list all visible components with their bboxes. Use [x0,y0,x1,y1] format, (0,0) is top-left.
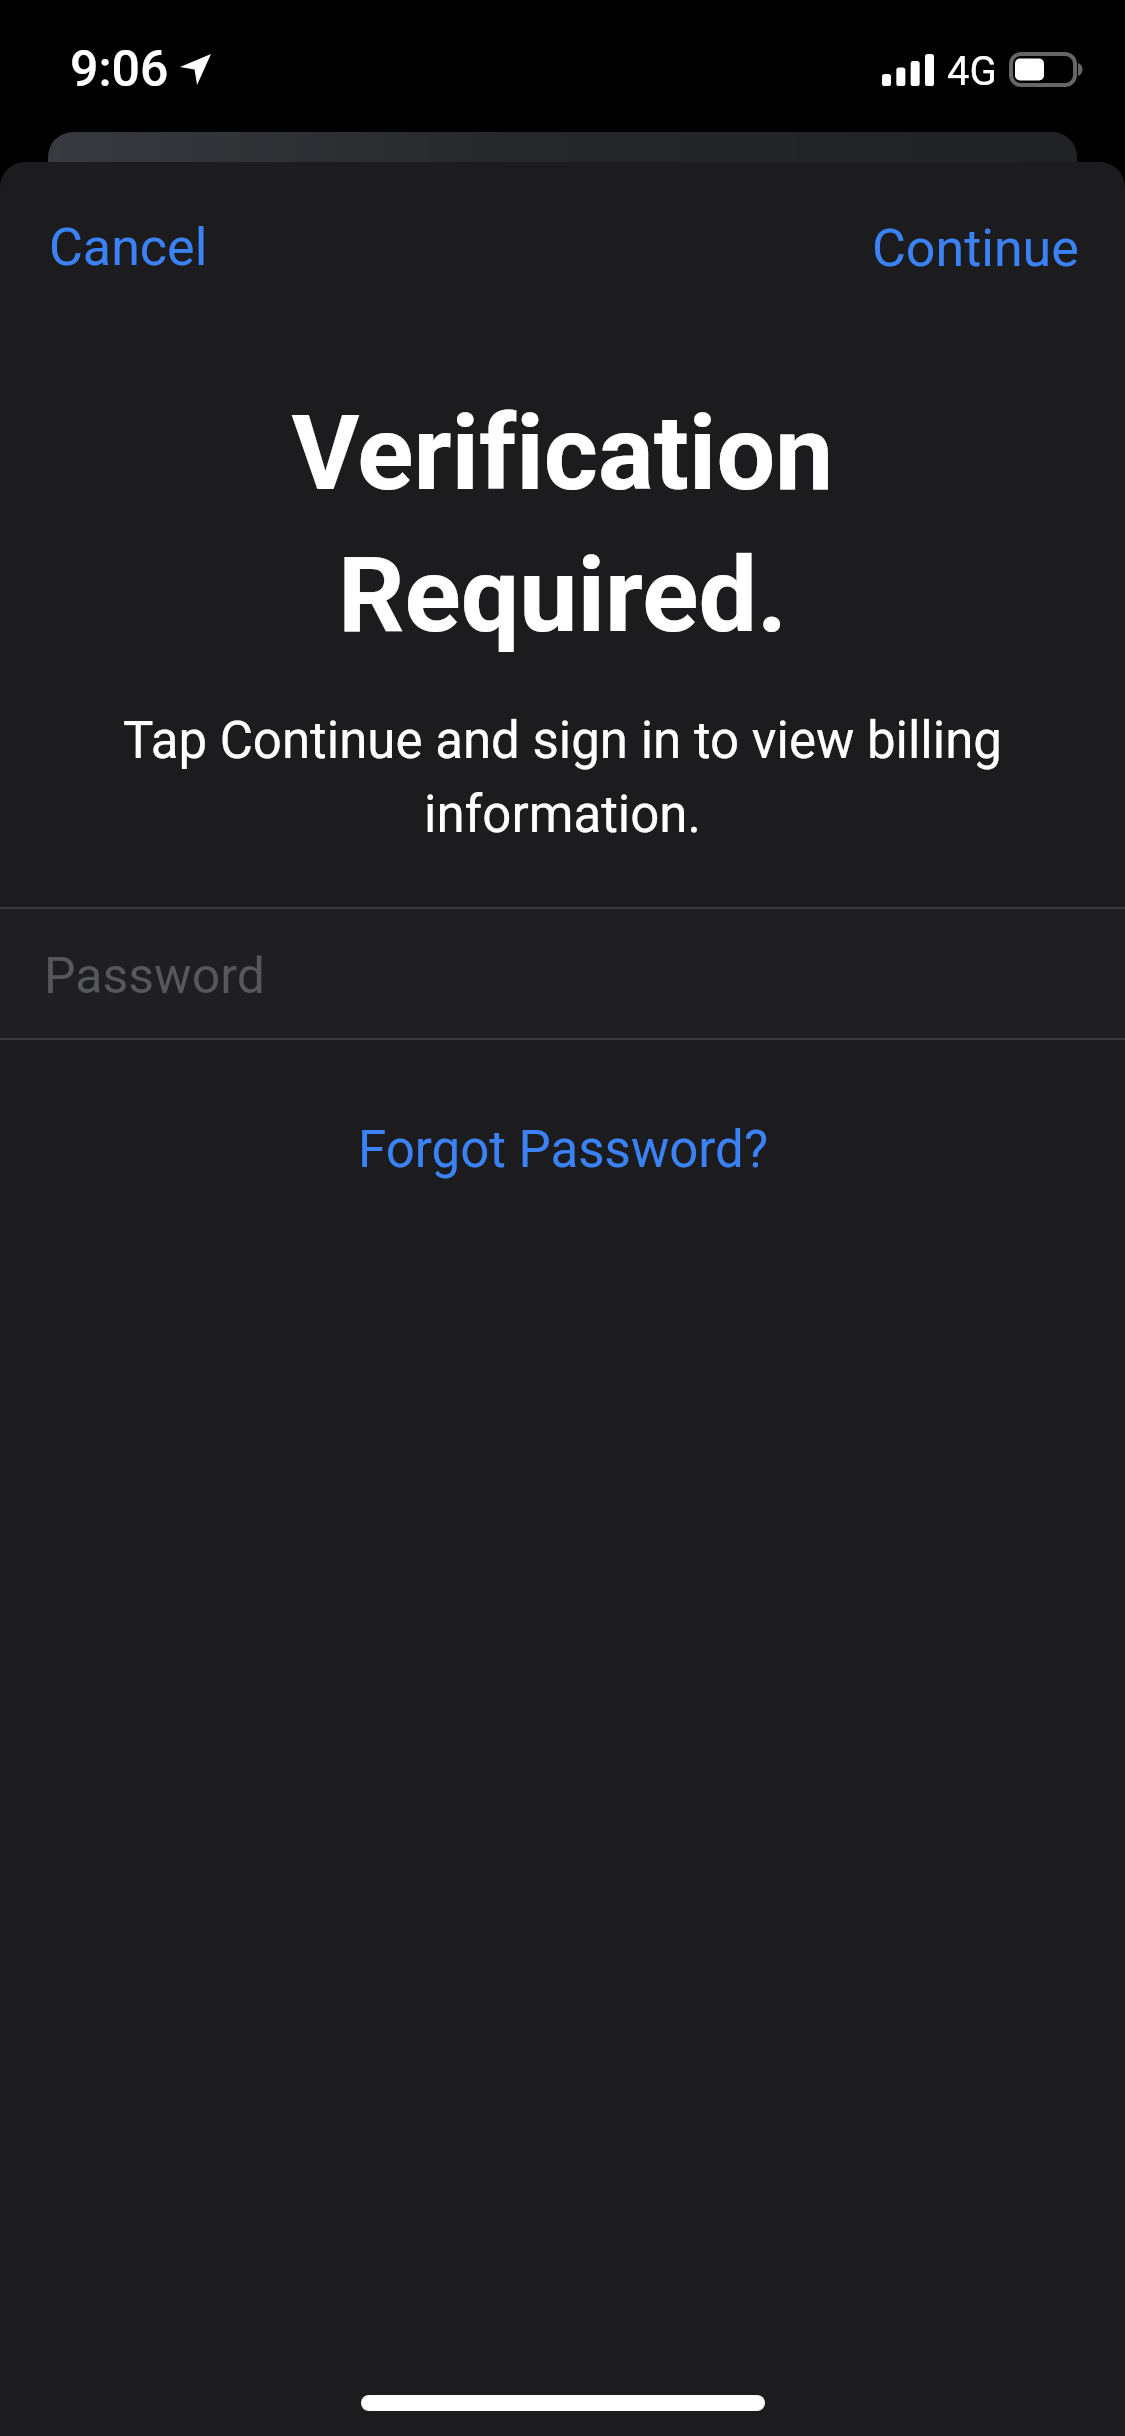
staticText: Password [44,947,265,1006]
staticText: Continue [872,218,1079,279]
button[interactable]: Continue [836,198,1115,299]
staticText: 9:06 [70,40,169,99]
staticText: Forgot Password? [358,1120,768,1180]
other: Home indicator [0,2378,1125,2436]
staticText: Tap Continue and sign in to view billing… [60,711,1065,844]
staticText: 4G [947,48,997,95]
button[interactable]: Cancel [13,197,244,298]
staticText: Verification Required. [140,393,985,656]
staticText: Cancel [49,217,208,278]
button[interactable]: Password field [0,907,1125,1040]
button[interactable]: Forgot Password? [318,1102,808,1198]
